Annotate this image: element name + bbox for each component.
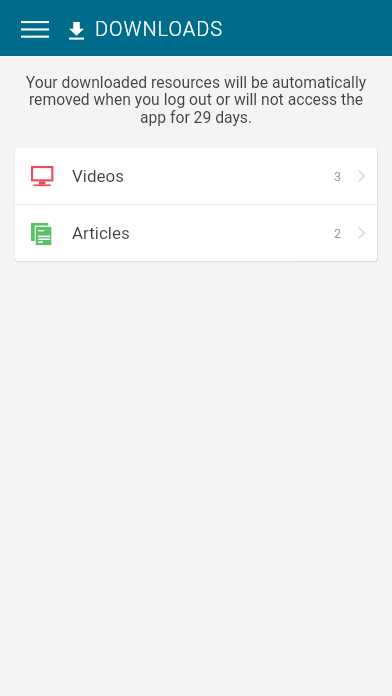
button[interactable]: Articles <box>15 205 377 261</box>
staticText: 3 <box>334 169 342 184</box>
staticText: Articles <box>72 223 130 243</box>
button[interactable]: Downloads <box>60 6 92 50</box>
staticText: Videos <box>72 166 125 186</box>
staticText: 2 <box>334 226 342 241</box>
button[interactable]: Open navigation menu <box>13 6 57 50</box>
staticText: DOWNLOADS <box>95 17 224 40</box>
staticText: Your downloaded resources will be automa… <box>22 73 370 127</box>
button[interactable]: Videos <box>15 148 377 204</box>
